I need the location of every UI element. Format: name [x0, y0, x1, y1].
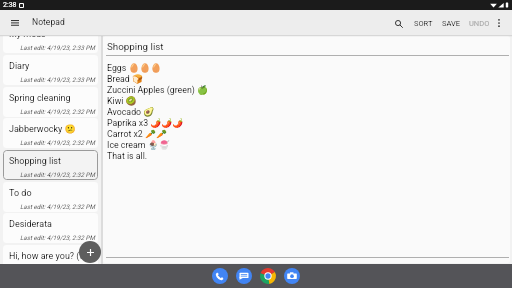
button[interactable]: Messages	[232, 268, 256, 288]
staticText: My meds	[9, 35, 46, 40]
staticText: Paprika x3 🌶🌶🌶	[107, 118, 184, 128]
button[interactable]: Add note	[79, 241, 101, 263]
staticText: To do	[9, 188, 32, 199]
staticText: Eggs 🥚🥚🥚	[107, 63, 162, 73]
staticText: Shopping list	[107, 41, 164, 52]
button[interactable]: My meds	[3, 35, 98, 53]
staticText: SAVE	[442, 19, 461, 28]
staticText: Zuccini Apples (green) 🍏	[107, 85, 208, 95]
button[interactable]: Spring cleaning	[3, 87, 98, 117]
button[interactable]: Jabberwocky 😕	[3, 118, 98, 148]
staticText: Diary	[9, 61, 30, 72]
staticText: Hi, how are you? (tap)	[9, 251, 96, 262]
button[interactable]: Phone	[208, 268, 232, 288]
staticText: Spring cleaning	[9, 93, 71, 104]
button[interactable]: Search	[390, 15, 407, 32]
staticText: Last edit: 4/19/23, 2:32 PM	[20, 108, 95, 115]
button[interactable]: Shopping list	[3, 150, 98, 180]
button[interactable]: SORT	[410, 15, 437, 32]
staticText: Last edit: 4/19/23, 2:32 PM	[20, 203, 95, 210]
staticText: Last edit: 4/19/23, 2:32 PM	[20, 139, 95, 146]
staticText: Kiwi 🥝	[107, 96, 137, 106]
button[interactable]: Open navigation menu	[7, 15, 23, 31]
button[interactable]: More options	[491, 15, 507, 31]
button[interactable]: Camera	[280, 268, 304, 288]
staticText: Last edit: 4/19/23, 2:33 PM	[20, 44, 95, 51]
button[interactable]: Chrome	[256, 268, 280, 288]
button[interactable]: Diary	[3, 55, 98, 85]
staticText: Last edit: 4/19/23, 2:33 PM	[20, 76, 95, 83]
staticText: Jabberwocky 😕	[9, 124, 76, 135]
button[interactable]: To do	[3, 182, 98, 212]
staticText: Shopping list	[9, 156, 61, 167]
staticText: 2:38	[3, 1, 17, 9]
staticText: Last edit: 4/19/23, 2:32 PM	[20, 171, 95, 178]
staticText: Bread 🍞	[107, 74, 143, 84]
button[interactable]: UNDO	[465, 15, 494, 32]
staticText: SORT	[414, 19, 433, 28]
staticText: Ice cream 🍨🍧	[107, 140, 170, 150]
button[interactable]: Desiderata	[3, 213, 98, 243]
staticText: Desiderata	[9, 219, 52, 230]
staticText: Notepad	[32, 17, 65, 27]
staticText: Last edit: 4/19/23, 2:32 PM	[20, 234, 95, 241]
staticText: That is all.	[107, 151, 148, 161]
staticText: Avocado 🥑	[107, 107, 155, 117]
staticText: UNDO	[469, 19, 490, 28]
staticText: Carrot x2 🥕🥕	[107, 129, 167, 139]
button[interactable]: SAVE	[438, 15, 465, 32]
button[interactable]: Hi, how are you? (tap)	[3, 245, 98, 264]
